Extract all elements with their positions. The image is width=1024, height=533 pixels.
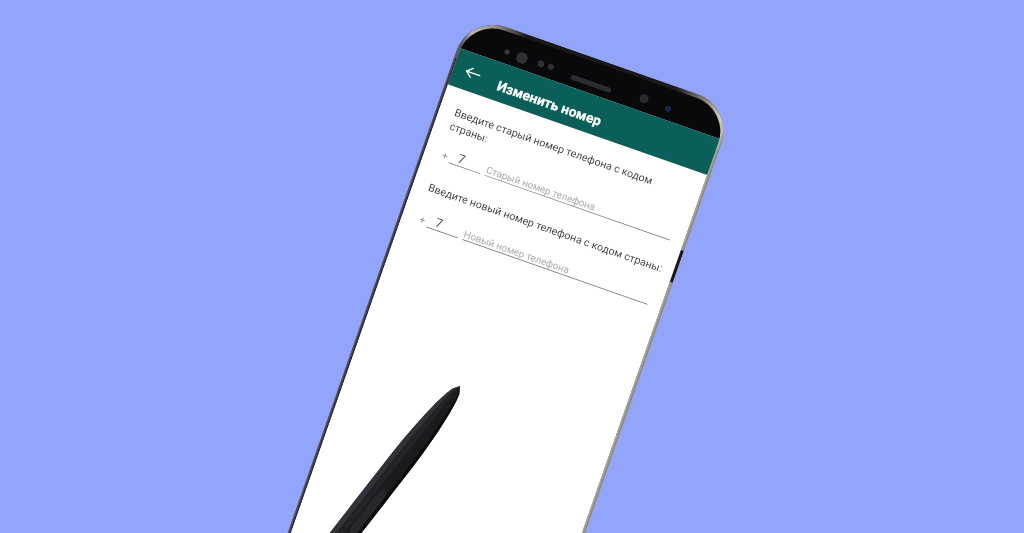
button[interactable]: [484, 175, 670, 240]
staticText: Новый номер телефона: [462, 228, 571, 276]
button[interactable]: [462, 239, 648, 305]
staticText: 7: [456, 151, 467, 167]
staticText: +: [418, 214, 428, 226]
staticText: Введите новый номер телефона с кодом стр…: [426, 180, 669, 277]
staticText: +: [440, 149, 450, 162]
staticText: Изменить номер: [495, 77, 604, 129]
staticText: 7: [433, 215, 445, 231]
staticText: Старый номер телефона: [485, 164, 597, 213]
button[interactable]: Back: [456, 56, 489, 89]
staticText: Введите старый номер телефона с кодом ст…: [448, 105, 665, 205]
